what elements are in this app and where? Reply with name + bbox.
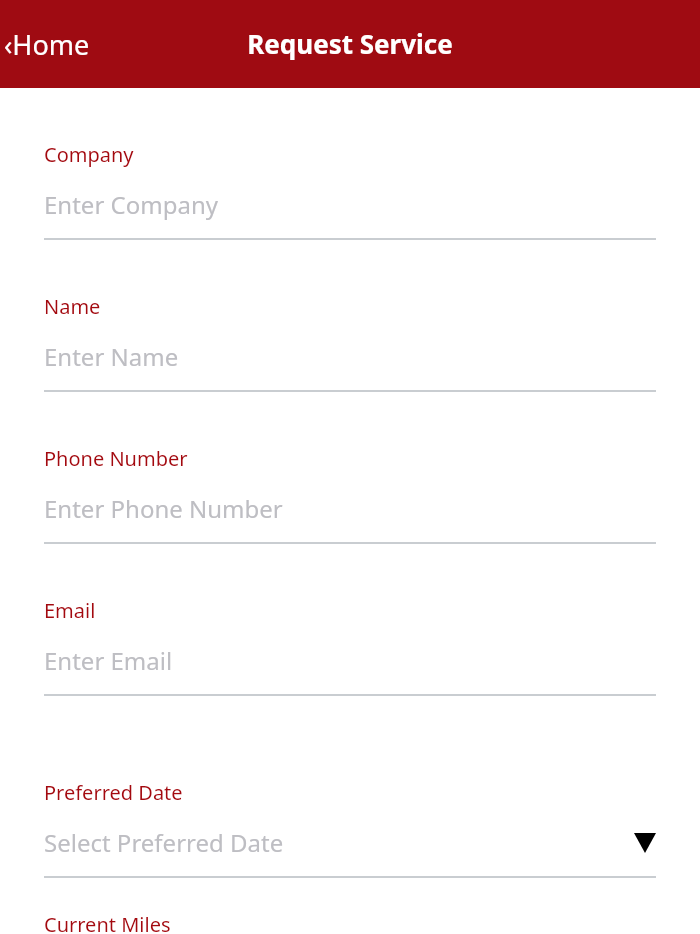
staticText: Company [44,141,134,168]
staticText: Email [44,597,96,624]
staticText: Enter Phone Number [44,492,283,525]
button[interactable]: Preferred Date [0,696,700,878]
staticText: Preferred Date [44,779,183,806]
staticText: Name [44,293,101,320]
button[interactable]: Company [0,88,700,240]
staticText: Request Service [247,26,453,61]
staticText: ‹Home [4,26,90,63]
button[interactable]: ‹Home [0,0,110,88]
staticText: Enter Company [44,188,218,221]
staticText: Enter Name [44,340,179,373]
button[interactable]: Email [0,544,700,696]
staticText: Select Preferred Date [44,826,284,859]
staticText: Enter Email [44,644,173,677]
other: Open date picker [634,833,656,853]
staticText: Phone Number [44,445,188,472]
button[interactable]: Current Miles [0,878,700,934]
button[interactable]: Phone Number [0,392,700,544]
staticText: Current Miles [44,911,171,934]
button[interactable]: Name [0,240,700,392]
